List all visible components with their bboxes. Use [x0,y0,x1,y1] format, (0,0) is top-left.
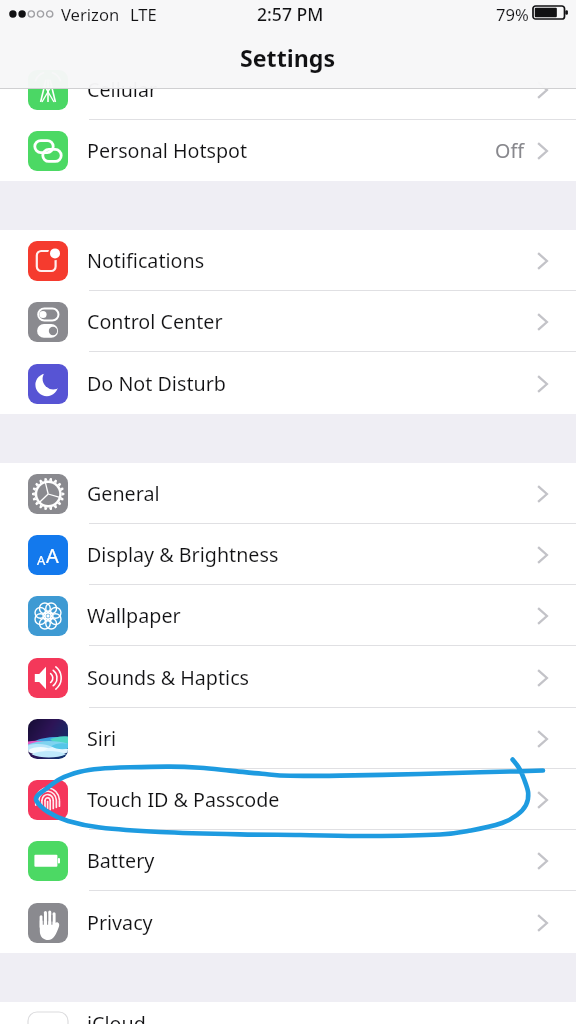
button[interactable]: iCloud [0,1002,576,1024]
button[interactable]: Wallpaper [0,585,576,646]
button[interactable]: Touch ID & Passcode [0,769,576,830]
staticText: Battery [87,847,155,874]
staticText: Off [495,137,524,164]
staticText: iCloud [87,1010,146,1024]
button[interactable]: Do Not Disturb [0,353,576,414]
button[interactable]: Battery [0,830,576,891]
button[interactable]: Sounds & Haptics [0,647,576,708]
button[interactable]: Cellular [0,59,576,120]
staticText: Wallpaper [87,602,181,629]
staticText: Do Not Disturb [87,370,226,397]
staticText: Display & Brightness [87,541,279,568]
staticText: Privacy [87,909,153,936]
staticText: Sounds & Haptics [87,664,250,691]
button[interactable]: Privacy [0,892,576,953]
staticText: Personal Hotspot [87,137,248,164]
button[interactable]: Control Center [0,291,576,352]
staticText: Verizon [61,3,120,26]
staticText: 2:57 PM [257,2,324,26]
button[interactable]: Notifications [0,230,576,291]
other: Highlight annotation [0,0,576,1024]
button[interactable]: A [0,524,576,585]
staticText: General [87,480,160,507]
staticText: Settings [240,42,336,74]
button[interactable]: Siri [0,708,576,769]
staticText: LTE [130,3,157,26]
staticText: Control Center [87,308,223,335]
staticText: A [37,551,46,569]
button[interactable]: General [0,463,576,524]
staticText: Notifications [87,247,205,274]
staticText: Cellular [87,76,158,103]
staticText: 79% [496,3,529,26]
button[interactable]: Personal Hotspot [0,120,576,181]
staticText: Siri [87,725,117,752]
staticText: A [46,542,59,569]
staticText: Touch ID & Passcode [87,786,280,813]
